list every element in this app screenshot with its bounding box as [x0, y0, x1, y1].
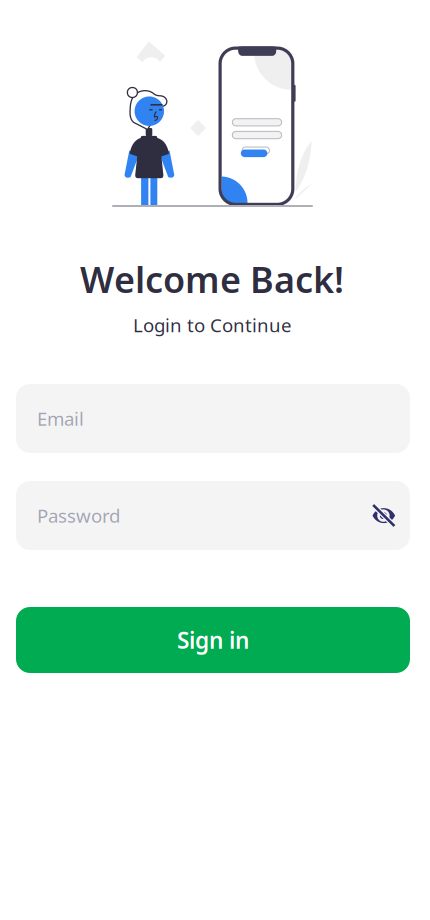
staticText: Login to Continue [133, 313, 292, 337]
staticText: Sign in [177, 625, 249, 655]
button[interactable]: Password [16, 481, 410, 550]
staticText: Email [37, 406, 84, 431]
button[interactable]: Sign in [16, 607, 410, 673]
staticText: Welcome Back! [80, 255, 344, 303]
staticText: Password [37, 503, 120, 528]
button[interactable]: Email [16, 384, 410, 453]
